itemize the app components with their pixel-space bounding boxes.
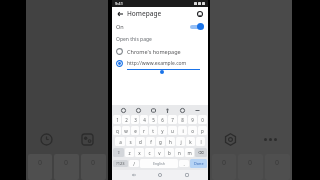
staticText: u	[171, 128, 174, 134]
staticText: 8	[181, 117, 184, 123]
button[interactable]: o	[188, 126, 197, 135]
button[interactable]: i	[178, 126, 187, 135]
staticText: 9:41	[115, 1, 123, 6]
button[interactable]: z	[125, 148, 134, 157]
button[interactable]: 4	[140, 115, 148, 124]
button[interactable]: t	[149, 126, 157, 135]
staticText: 0	[222, 158, 227, 168]
button[interactable]: Keyboard tool 4	[163, 106, 171, 114]
button[interactable]: k	[186, 137, 195, 146]
button[interactable]: 6	[158, 115, 167, 124]
button[interactable]: y	[158, 126, 167, 135]
button[interactable]: 1	[113, 115, 121, 124]
button[interactable]: Shift	[113, 148, 124, 157]
button[interactable]: /	[129, 160, 139, 167]
button[interactable]: .	[179, 160, 189, 167]
staticText: 7	[171, 117, 174, 123]
staticText: On	[116, 23, 124, 30]
staticText: g	[159, 139, 162, 145]
button[interactable]: Keyboard tool 2	[134, 106, 142, 114]
button[interactable]: Done	[190, 159, 207, 168]
button[interactable]: f	[146, 137, 155, 146]
button[interactable]: Symbols	[113, 160, 128, 167]
button[interactable]: e	[131, 126, 139, 135]
staticText: v	[158, 150, 161, 156]
button[interactable]: x	[135, 148, 144, 157]
button[interactable]: Back	[129, 170, 139, 180]
button[interactable]: Keyboard tool 3	[149, 106, 157, 114]
button[interactable]: u	[168, 126, 177, 135]
button[interactable]: d	[136, 137, 145, 146]
button[interactable]: More	[251, 124, 292, 154]
button[interactable]: 0	[198, 115, 207, 124]
button[interactable]: q	[113, 126, 121, 135]
staticText: Open this page	[116, 36, 152, 43]
button[interactable]: Recents	[182, 170, 192, 180]
button[interactable]: m	[185, 148, 194, 157]
staticText: c	[148, 150, 151, 156]
button[interactable]: English	[140, 159, 178, 168]
button[interactable]: On	[112, 20, 208, 33]
staticText: 0	[91, 158, 96, 168]
button[interactable]: Keyboard tool 1	[119, 106, 127, 114]
staticText: ⌫	[198, 150, 204, 155]
staticText: p	[201, 128, 204, 134]
staticText: 0	[201, 117, 204, 123]
button[interactable]: 8	[178, 115, 187, 124]
button[interactable]: s	[126, 137, 135, 146]
button[interactable]: a	[115, 137, 125, 146]
staticText: 0	[275, 158, 280, 168]
button[interactable]: Timer	[26, 124, 67, 154]
staticText: Chrome's homepage	[127, 48, 181, 55]
button[interactable]: Home	[155, 170, 165, 180]
staticText: 9	[191, 117, 194, 123]
button[interactable]: l	[196, 137, 205, 146]
staticText: English	[153, 161, 165, 166]
staticText: n	[178, 150, 181, 156]
button[interactable]: j	[176, 137, 185, 146]
button[interactable]: g	[156, 137, 165, 146]
button[interactable]: 7	[168, 115, 177, 124]
staticText: 3	[134, 117, 137, 123]
staticText: j	[180, 139, 182, 145]
button[interactable]: Chrome's homepage	[112, 45, 208, 57]
staticText: o	[191, 128, 194, 134]
button[interactable]: Settings	[210, 124, 251, 154]
button[interactable]: r	[140, 126, 148, 135]
button[interactable]: Back	[115, 9, 125, 19]
button[interactable]: http://www.example.com	[112, 57, 208, 73]
staticText: y	[161, 128, 164, 134]
button[interactable]: 2	[122, 115, 130, 124]
staticText: 0	[248, 158, 253, 168]
staticText: 0	[64, 158, 69, 168]
button[interactable]: 9	[188, 115, 197, 124]
button[interactable]: h	[166, 137, 175, 146]
button[interactable]: 3	[131, 115, 139, 124]
staticText: 1	[116, 117, 119, 123]
button[interactable]: v	[155, 148, 164, 157]
staticText: 2	[125, 117, 128, 123]
button[interactable]: c	[145, 148, 154, 157]
button[interactable]: n	[175, 148, 184, 157]
button[interactable]: p	[198, 126, 207, 135]
staticText: z	[128, 150, 131, 156]
staticText: Done	[194, 161, 204, 166]
staticText: ⇧	[117, 150, 121, 155]
button[interactable]: Backspace	[195, 148, 207, 157]
staticText: ?123	[116, 161, 125, 166]
staticText: s	[129, 139, 132, 145]
button[interactable]: Keyboard tool 6	[193, 106, 201, 114]
button[interactable]: b	[165, 148, 174, 157]
button[interactable]: w	[122, 126, 130, 135]
button[interactable]: Help	[195, 9, 205, 19]
button[interactable]: Keyboard tool 5	[178, 106, 186, 114]
button[interactable]: Stickers	[67, 124, 108, 154]
staticText: /	[133, 161, 135, 167]
button[interactable]: 5	[149, 115, 157, 124]
